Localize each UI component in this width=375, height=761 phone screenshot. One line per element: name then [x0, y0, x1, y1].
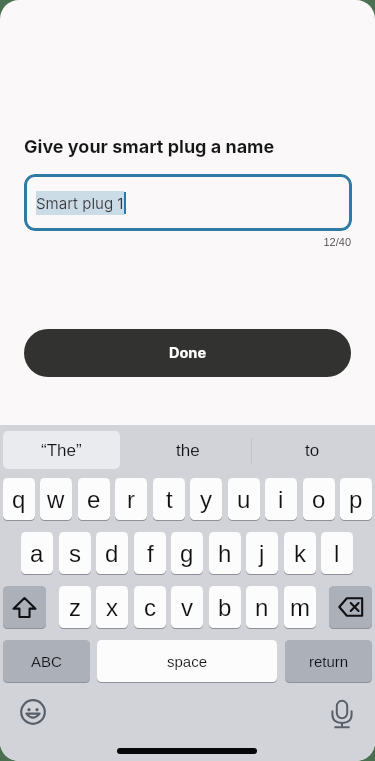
button[interactable]: Emoji keyboard [20, 699, 46, 725]
staticText: i [278, 486, 284, 513]
button[interactable]: Done [24, 329, 351, 377]
button[interactable]: l [321, 532, 353, 574]
button[interactable]: “The” [3, 431, 120, 469]
staticText: return [309, 653, 349, 670]
staticText: b [218, 594, 232, 621]
staticText: z [69, 594, 81, 621]
button[interactable]: x [96, 586, 128, 628]
button[interactable]: z [59, 586, 91, 628]
button[interactable]: Shift [3, 586, 46, 628]
staticText: Smart plug 1 [36, 194, 124, 212]
staticText: r [127, 486, 135, 513]
button[interactable]: ABC [3, 640, 90, 682]
staticText: h [218, 540, 232, 567]
staticText: k [294, 540, 306, 567]
button[interactable]: space [97, 640, 277, 682]
staticText: the [176, 441, 200, 460]
button[interactable]: b [209, 586, 241, 628]
staticText: Done [169, 344, 207, 362]
button[interactable]: t [153, 478, 185, 520]
button[interactable]: r [115, 478, 147, 520]
button[interactable]: Dictation [332, 700, 352, 729]
staticText: u [237, 486, 251, 513]
button[interactable]: y [190, 478, 222, 520]
button[interactable]: Backspace [329, 586, 372, 628]
button[interactable]: o [303, 478, 335, 520]
button[interactable]: e [78, 478, 110, 520]
staticText: v [181, 594, 193, 621]
staticText: g [180, 540, 194, 567]
staticText: t [166, 486, 173, 513]
button[interactable]: the [125, 431, 250, 469]
button[interactable]: to [250, 431, 375, 469]
button[interactable]: n [246, 586, 278, 628]
staticText: a [30, 540, 44, 567]
button[interactable]: q [3, 478, 35, 520]
button[interactable]: w [40, 478, 72, 520]
button[interactable]: f [134, 532, 166, 574]
staticText: l [334, 540, 340, 567]
button[interactable]: m [284, 586, 316, 628]
staticText: d [105, 540, 119, 567]
button[interactable]: u [228, 478, 260, 520]
staticText: c [144, 594, 156, 621]
staticText: y [200, 486, 212, 513]
staticText: q [12, 486, 26, 513]
staticText: m [290, 594, 310, 621]
staticText: j [259, 540, 265, 567]
staticText: 12/40 [0, 236, 351, 248]
staticText: space [167, 653, 208, 670]
button[interactable]: k [284, 532, 316, 574]
button[interactable]: p [340, 478, 372, 520]
button[interactable]: i [265, 478, 297, 520]
button[interactable]: v [171, 586, 203, 628]
staticText: Give your smart plug a name [24, 136, 275, 158]
staticText: p [349, 486, 363, 513]
button[interactable]: g [171, 532, 203, 574]
staticText: ABC [31, 653, 62, 670]
staticText: “The” [41, 441, 82, 460]
button[interactable]: j [246, 532, 278, 574]
staticText: w [47, 486, 65, 513]
staticText: f [147, 540, 154, 567]
button[interactable]: h [209, 532, 241, 574]
staticText: s [69, 540, 81, 567]
button[interactable]: s [59, 532, 91, 574]
staticText: n [255, 594, 269, 621]
staticText: e [87, 486, 101, 513]
button[interactable]: c [134, 586, 166, 628]
staticText: o [312, 486, 326, 513]
staticText: to [305, 441, 320, 460]
button[interactable]: d [96, 532, 128, 574]
button[interactable]: Smart plug 1 [24, 174, 352, 231]
button[interactable]: a [21, 532, 53, 574]
staticText: x [106, 594, 118, 621]
button[interactable]: return [285, 640, 372, 682]
